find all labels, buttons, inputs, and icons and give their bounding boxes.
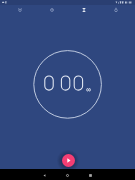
- button[interactable]: Start timer: [62, 154, 75, 167]
- button[interactable]: Clock: [36, 6, 68, 14]
- button[interactable]: Home: [56, 170, 79, 180]
- button[interactable]: Back: [33, 170, 56, 180]
- button[interactable]: Stopwatch: [100, 6, 132, 14]
- button[interactable]: Recents: [79, 170, 102, 180]
- button[interactable]: Alarm: [3, 6, 36, 14]
- button[interactable]: Timer: [68, 6, 100, 14]
